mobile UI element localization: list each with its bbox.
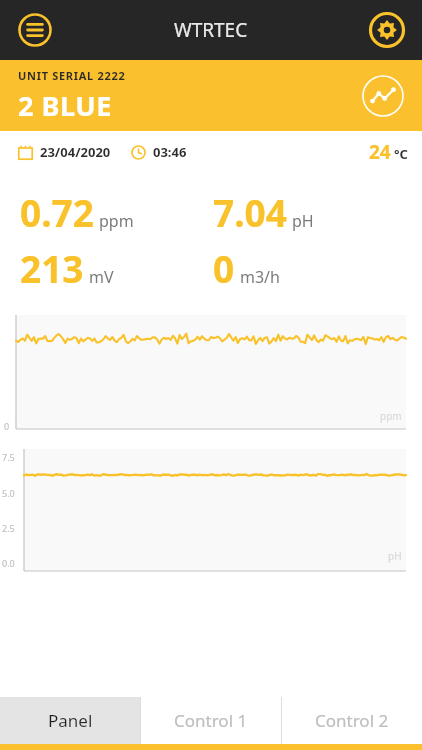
staticText: 7.5 <box>2 451 15 463</box>
staticText: 213 <box>20 243 84 293</box>
staticText: 24 <box>369 139 391 165</box>
staticText: 0 <box>213 243 235 293</box>
staticText: 0.0 <box>2 557 15 569</box>
staticText: 23/04/2020 <box>40 143 111 161</box>
staticText: Control 2 <box>315 709 389 732</box>
staticText: 2 BLUE <box>18 87 112 124</box>
staticText: Panel <box>48 709 93 732</box>
staticText: pH <box>292 210 314 232</box>
staticText: ppm <box>99 210 134 232</box>
staticText: mV <box>89 266 114 288</box>
staticText: UNIT SERIAL 2222 <box>18 68 126 83</box>
staticText: pH <box>388 549 402 563</box>
staticText: WTRTEC <box>174 17 248 43</box>
button[interactable]: Trend chart <box>360 73 406 119</box>
staticText: Control 1 <box>174 709 248 732</box>
staticText: 7.04 <box>213 187 287 237</box>
staticText: °C <box>394 145 408 163</box>
button[interactable]: Panel <box>0 697 140 744</box>
staticText: ppm <box>380 409 402 423</box>
button[interactable]: Control 2 <box>282 697 422 744</box>
staticText: 0 <box>4 420 10 432</box>
staticText: 2.5 <box>2 522 15 534</box>
staticText: 5.0 <box>2 487 15 499</box>
staticText: 0.72 <box>20 187 94 237</box>
staticText: 03:46 <box>153 143 187 161</box>
button[interactable]: Menu <box>14 9 56 51</box>
button[interactable]: Settings <box>366 9 408 51</box>
staticText: m3/h <box>240 266 280 288</box>
button[interactable]: Control 1 <box>141 697 281 744</box>
